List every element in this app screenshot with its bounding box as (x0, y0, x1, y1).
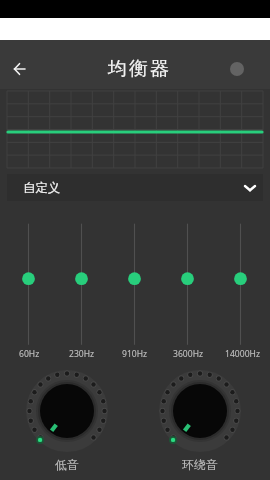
button[interactable]: 环绕音 (156, 367, 244, 455)
button[interactable]: Power (223, 55, 251, 83)
button[interactable]: 自定义 (7, 174, 263, 201)
staticText: 230Hz (69, 348, 95, 360)
staticText: 自定义 (23, 180, 61, 196)
staticText: 低音 (55, 457, 79, 472)
staticText: 60Hz (19, 348, 40, 360)
staticText: 3600Hz (173, 348, 204, 360)
button[interactable]: 低音 (23, 367, 111, 455)
staticText: 14000Hz (225, 348, 260, 360)
staticText: 均衡器 (107, 57, 170, 81)
button[interactable]: Back (5, 54, 34, 83)
staticText: 910Hz (122, 348, 148, 360)
staticText: 环绕音 (182, 457, 218, 472)
